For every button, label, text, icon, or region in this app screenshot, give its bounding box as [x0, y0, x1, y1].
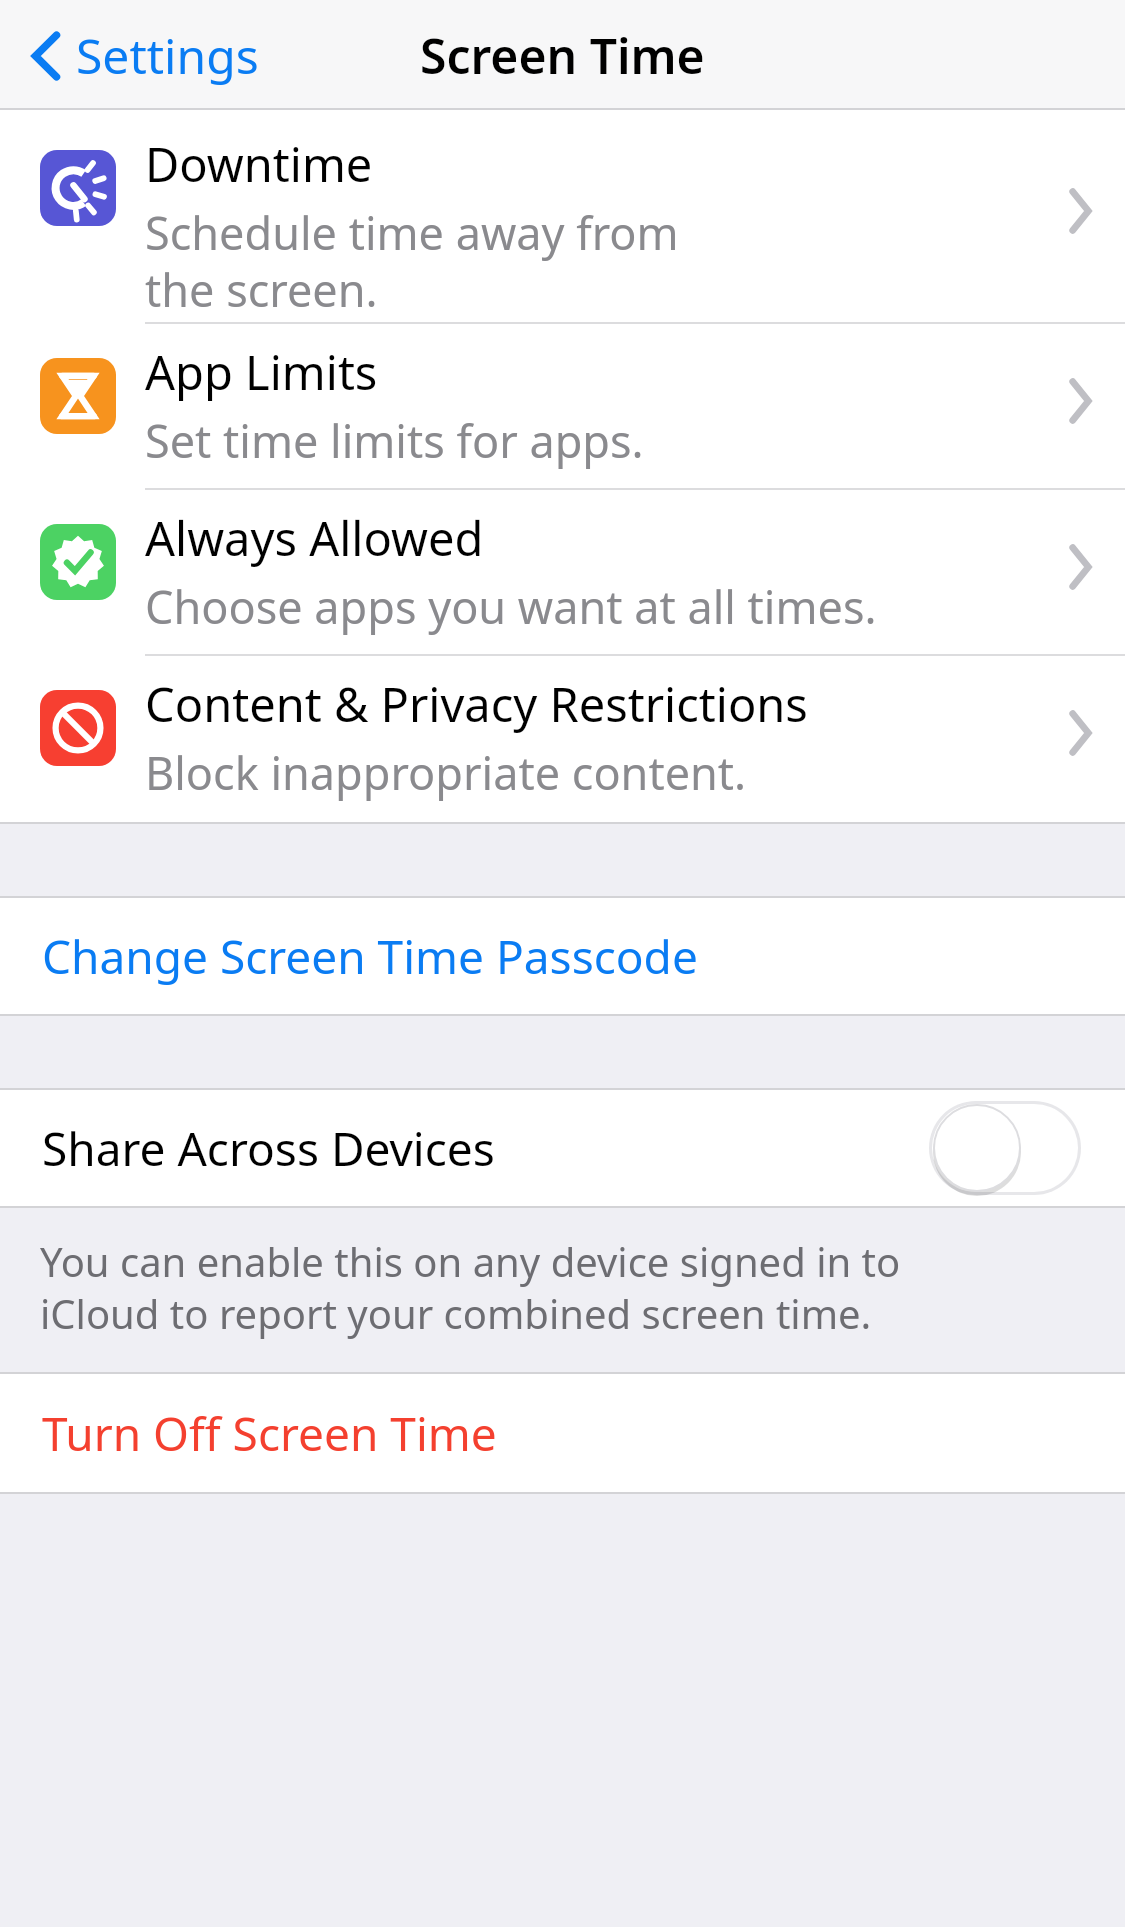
staticText: Screen Time	[420, 23, 705, 88]
staticText: Turn Off Screen Time	[42, 1402, 497, 1465]
staticText: Change Screen Time Passcode	[42, 925, 698, 988]
staticText: Share Across Devices	[42, 1117, 929, 1180]
button[interactable]: Settings	[22, 13, 267, 98]
staticText: Block inappropriate content.	[145, 742, 747, 803]
staticText: App Limits	[145, 340, 378, 404]
staticText: Schedule time away from the screen.	[145, 202, 679, 320]
button[interactable]: Share Across Devices	[0, 1090, 1125, 1206]
button[interactable]: Downtime	[0, 110, 1125, 324]
staticText: Choose apps you want at all times.	[145, 576, 877, 637]
staticText: Downtime	[145, 132, 373, 196]
staticText: Always Allowed	[145, 506, 484, 570]
staticText: Content & Privacy Restrictions	[145, 672, 808, 736]
button[interactable]: Always Allowed	[0, 490, 1125, 656]
staticText: Settings	[76, 23, 259, 88]
button[interactable]: Share Across Devices toggle, off	[929, 1101, 1081, 1195]
button[interactable]: Change Screen Time Passcode	[0, 898, 1125, 1014]
button[interactable]: Content & Privacy Restrictions	[0, 656, 1125, 822]
staticText: Set time limits for apps.	[145, 410, 644, 471]
staticText: You can enable this on any device signed…	[40, 1234, 901, 1341]
button[interactable]: Turn Off Screen Time	[0, 1374, 1125, 1492]
button[interactable]: App Limits	[0, 324, 1125, 490]
